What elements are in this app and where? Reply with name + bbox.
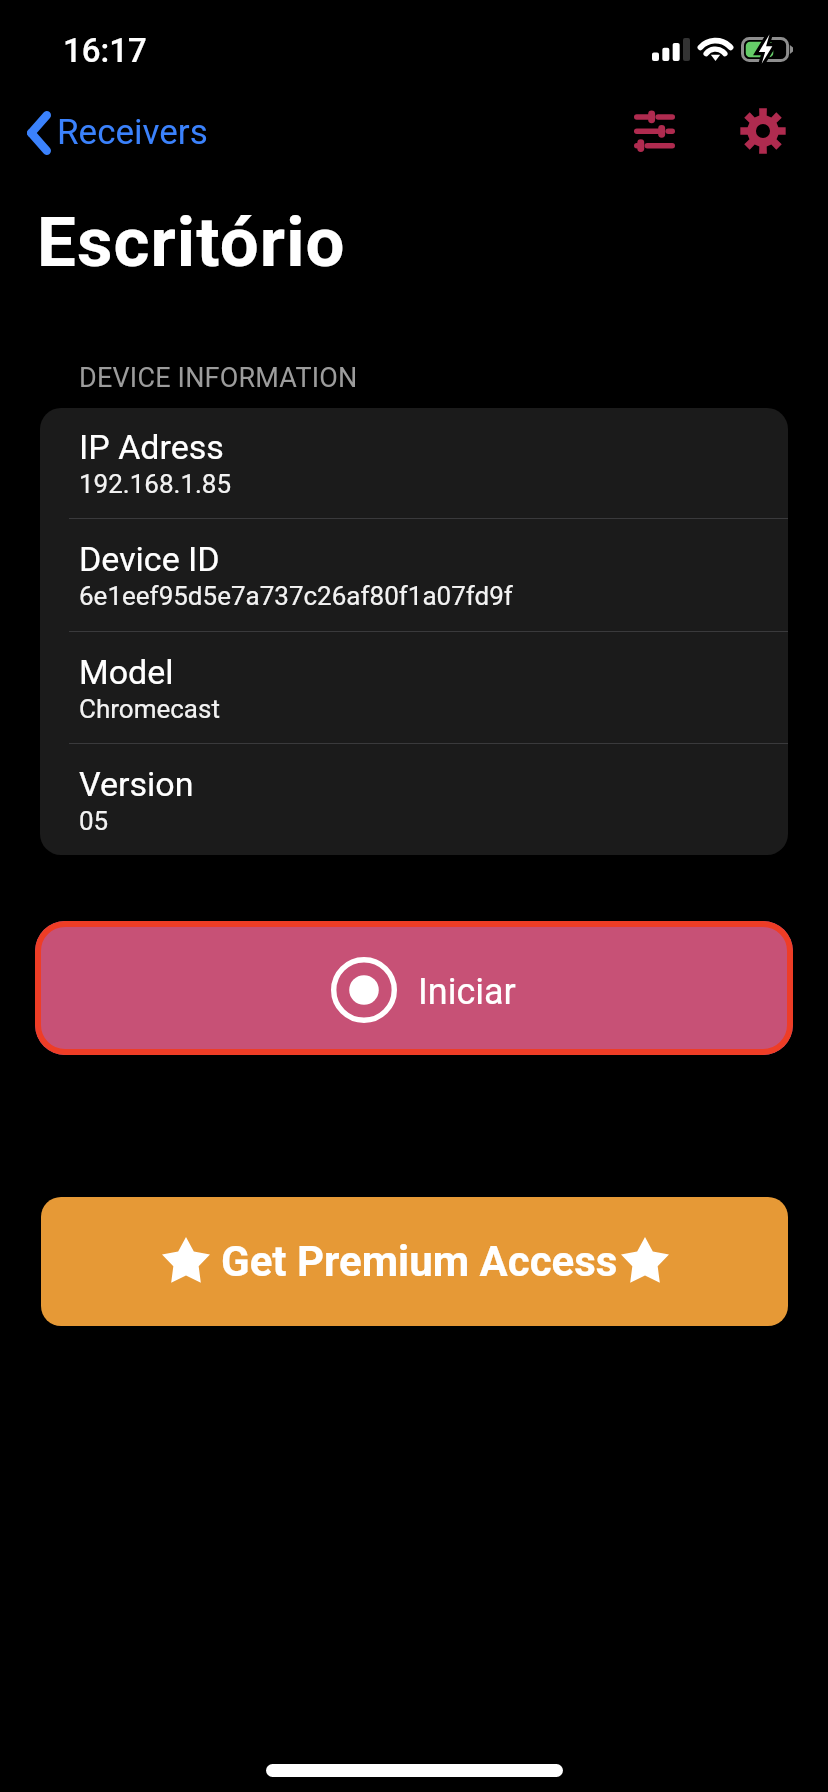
staticText: 192.168.1.85 [79,469,232,499]
staticText: Device ID [79,539,220,579]
button[interactable]: Filters [613,90,695,172]
button[interactable]: Receivers [6,97,224,169]
staticText: Iniciar [418,971,516,1013]
staticText: DEVICE INFORMATION [79,362,358,394]
staticText: 05 [79,806,109,836]
staticText: Escritório [37,202,346,283]
staticText: Get Premium Access [221,1237,618,1286]
staticText: Version [79,764,194,804]
staticText: Chromecast [79,694,220,724]
button[interactable]: Settings [722,90,804,172]
staticText: IP Adress [79,427,224,467]
staticText: 6e1eef95d5e7a737c26af80f1a07fd9f [79,581,513,611]
button[interactable]: Iniciar [35,921,793,1055]
staticText: Model [79,652,174,692]
button[interactable]: Version [40,744,788,855]
staticText: 16:17 [63,31,147,70]
staticText: Receivers [57,112,208,153]
button[interactable]: IP Adress [40,408,788,518]
button[interactable]: Model [40,632,788,743]
button[interactable]: Device ID [40,519,788,631]
button[interactable]: Get Premium Access [41,1197,788,1326]
